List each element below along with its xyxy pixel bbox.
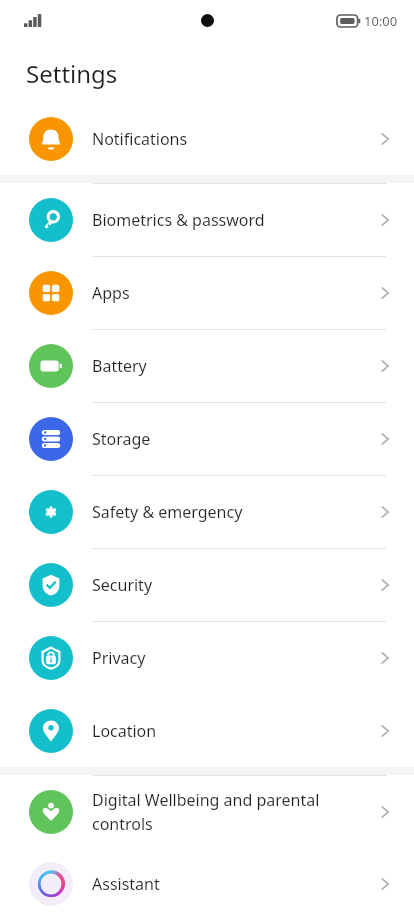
other: Biometrics and password	[29, 198, 73, 242]
button[interactable]: Location	[0, 694, 414, 767]
other: Safety and emergency	[29, 490, 73, 534]
button[interactable]: Privacy	[0, 621, 414, 694]
button[interactable]: Assistant	[0, 848, 414, 920]
button[interactable]: Security	[0, 548, 414, 621]
other: Privacy	[29, 636, 73, 680]
other: Digital Wellbeing and parental controls	[29, 790, 73, 834]
button[interactable]: Digital Wellbeing and parental controls	[0, 775, 414, 848]
staticText: Privacy	[92, 647, 363, 669]
staticText: Apps	[92, 282, 363, 304]
staticText: Storage	[92, 428, 363, 450]
other: Apps	[29, 271, 73, 315]
other: Assistant	[29, 862, 73, 906]
staticText: Digital Wellbeing and parental controls	[92, 789, 363, 835]
other: Battery	[29, 344, 73, 388]
staticText: Assistant	[92, 873, 363, 895]
staticText: Notifications	[92, 128, 363, 150]
staticText: Safety & emergency	[92, 501, 363, 523]
staticText: Security	[92, 574, 363, 596]
staticText: Biometrics & password	[92, 209, 363, 231]
staticText: Battery	[92, 355, 363, 377]
button[interactable]: Battery	[0, 329, 414, 402]
other: Location	[29, 709, 73, 753]
button[interactable]: Apps	[0, 256, 414, 329]
staticText: Settings	[26, 57, 118, 90]
button[interactable]: Safety and emergency	[0, 475, 414, 548]
button[interactable]: Notifications	[0, 102, 414, 175]
staticText: 10:00	[364, 12, 398, 30]
other: Notifications	[29, 117, 73, 161]
other: Security	[29, 563, 73, 607]
staticText: Location	[92, 720, 363, 742]
button[interactable]: Biometrics and password	[0, 183, 414, 256]
button[interactable]: Storage	[0, 402, 414, 475]
other: Storage	[29, 417, 73, 461]
